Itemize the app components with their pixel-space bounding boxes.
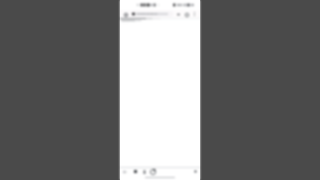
button[interactable]: Back <box>121 168 129 175</box>
button[interactable]: Address bar <box>131 11 173 17</box>
button[interactable]: Home <box>131 168 139 175</box>
button[interactable]: More options <box>191 11 197 17</box>
button[interactable]: Home <box>122 11 129 18</box>
button[interactable]: Share <box>140 168 148 175</box>
button[interactable]: Tabs <box>149 168 157 175</box>
button[interactable]: Reload <box>183 11 190 18</box>
button[interactable]: New tab <box>192 168 199 175</box>
button[interactable]: Downloads <box>175 11 182 18</box>
